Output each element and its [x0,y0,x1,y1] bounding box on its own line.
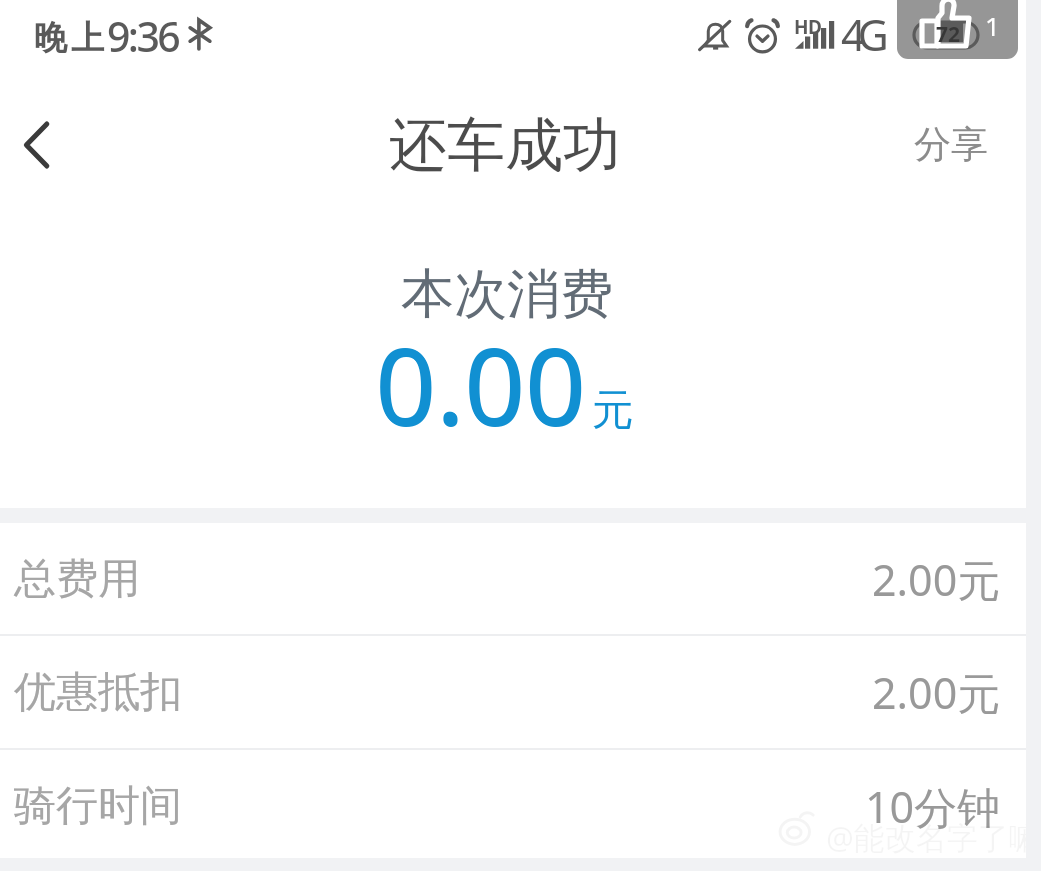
button[interactable]: Back [0,90,84,198]
staticText: 骑行时间 [14,780,182,833]
button[interactable]: 骑行时间 [0,750,1026,863]
staticText: 72 [936,20,961,49]
button[interactable]: Battery and like badge [897,0,1018,59]
staticText: 10分钟 [865,777,1001,836]
staticText: 总费用 [14,553,140,606]
staticText: 晚 [34,17,67,59]
staticText: 4G [841,5,881,64]
staticText: 优惠抵扣 [14,666,182,719]
staticText: HD [794,14,822,40]
button[interactable]: 优惠抵扣 [0,636,1026,749]
staticText: 还车成功 [389,109,621,182]
staticText: 元 [592,384,634,437]
button[interactable]: 总费用 [0,523,1026,636]
staticText: 0.00 [375,312,586,456]
staticText: @能改名字了嘛 [826,816,1026,858]
staticText: 分享 [914,121,988,168]
staticText: 2.00元 [872,550,1001,609]
staticText: 2.00元 [872,663,1001,722]
staticText: 9:36 [107,8,179,64]
staticText: 上 [71,17,104,59]
staticText: 0.00 [376,313,587,457]
staticText: 1 [985,8,1000,43]
staticText: 本次消费 [0,261,1020,328]
button[interactable]: 分享 [914,90,988,198]
